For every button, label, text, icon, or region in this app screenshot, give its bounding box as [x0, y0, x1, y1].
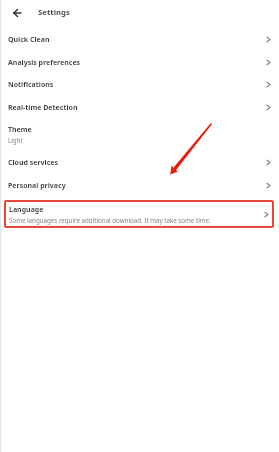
button[interactable]: Personal privacy: [0, 174, 279, 197]
button[interactable]: Quick Clean: [0, 28, 279, 51]
button[interactable]: Back: [9, 5, 25, 21]
button[interactable]: Real-time Detection: [0, 96, 279, 119]
staticText: Analysis preferences: [8, 58, 81, 68]
staticText: Personal privacy: [8, 181, 66, 191]
staticText: Real-time Detection: [8, 103, 78, 113]
button[interactable]: Theme: [0, 118, 279, 151]
button[interactable]: Notifications: [0, 73, 279, 96]
staticText: Language: [9, 205, 44, 215]
staticText: Light: [8, 136, 23, 144]
staticText: Notifications: [8, 80, 54, 90]
button[interactable]: Cloud services: [0, 151, 279, 174]
staticText: Settings: [38, 7, 70, 18]
button[interactable]: Analysis preferences: [0, 51, 279, 74]
staticText: Quick Clean: [8, 35, 50, 45]
staticText: Cloud services: [8, 158, 58, 168]
button[interactable]: Language: [4, 200, 274, 228]
staticText: Some languages require additional downlo…: [9, 216, 211, 224]
staticText: Theme: [8, 125, 32, 135]
